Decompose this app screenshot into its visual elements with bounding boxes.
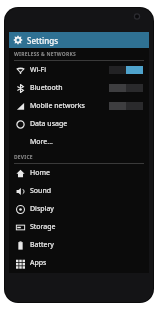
button[interactable]: More... (9, 133, 149, 151)
staticText: Settings (27, 35, 59, 46)
staticText: Wi-Fi (30, 65, 47, 75)
button[interactable]: Bluetooth toggle (109, 84, 143, 92)
staticText: Display (30, 204, 54, 214)
staticText: WIRELESS & NETWORKS (14, 51, 76, 58)
button[interactable]: Display (9, 200, 149, 218)
staticText: Storage (30, 222, 56, 232)
button[interactable]: Bluetooth (9, 79, 149, 97)
staticText: Home (30, 168, 50, 178)
staticText: Apps (30, 258, 47, 268)
button[interactable]: Data usage (9, 115, 149, 133)
button[interactable]: Storage (9, 218, 149, 236)
staticText: Sound (30, 186, 52, 196)
button[interactable]: Mobile networks (9, 97, 149, 115)
button[interactable]: Home (9, 164, 149, 182)
button[interactable]: Apps (9, 254, 149, 272)
button[interactable]: Sound (9, 182, 149, 200)
staticText: Battery (30, 240, 54, 250)
button[interactable]: Wi-Fi toggle (109, 66, 143, 74)
staticText: Mobile networks (30, 101, 85, 111)
button[interactable]: Settings (9, 32, 149, 48)
button[interactable]: Battery (9, 236, 149, 254)
staticText: Bluetooth (30, 83, 63, 93)
button[interactable]: Mobile networks toggle (109, 102, 143, 110)
staticText: DEVICE (14, 154, 33, 161)
staticText: More... (30, 137, 53, 147)
button[interactable]: Wi-Fi (9, 61, 149, 79)
staticText: Data usage (30, 119, 68, 129)
